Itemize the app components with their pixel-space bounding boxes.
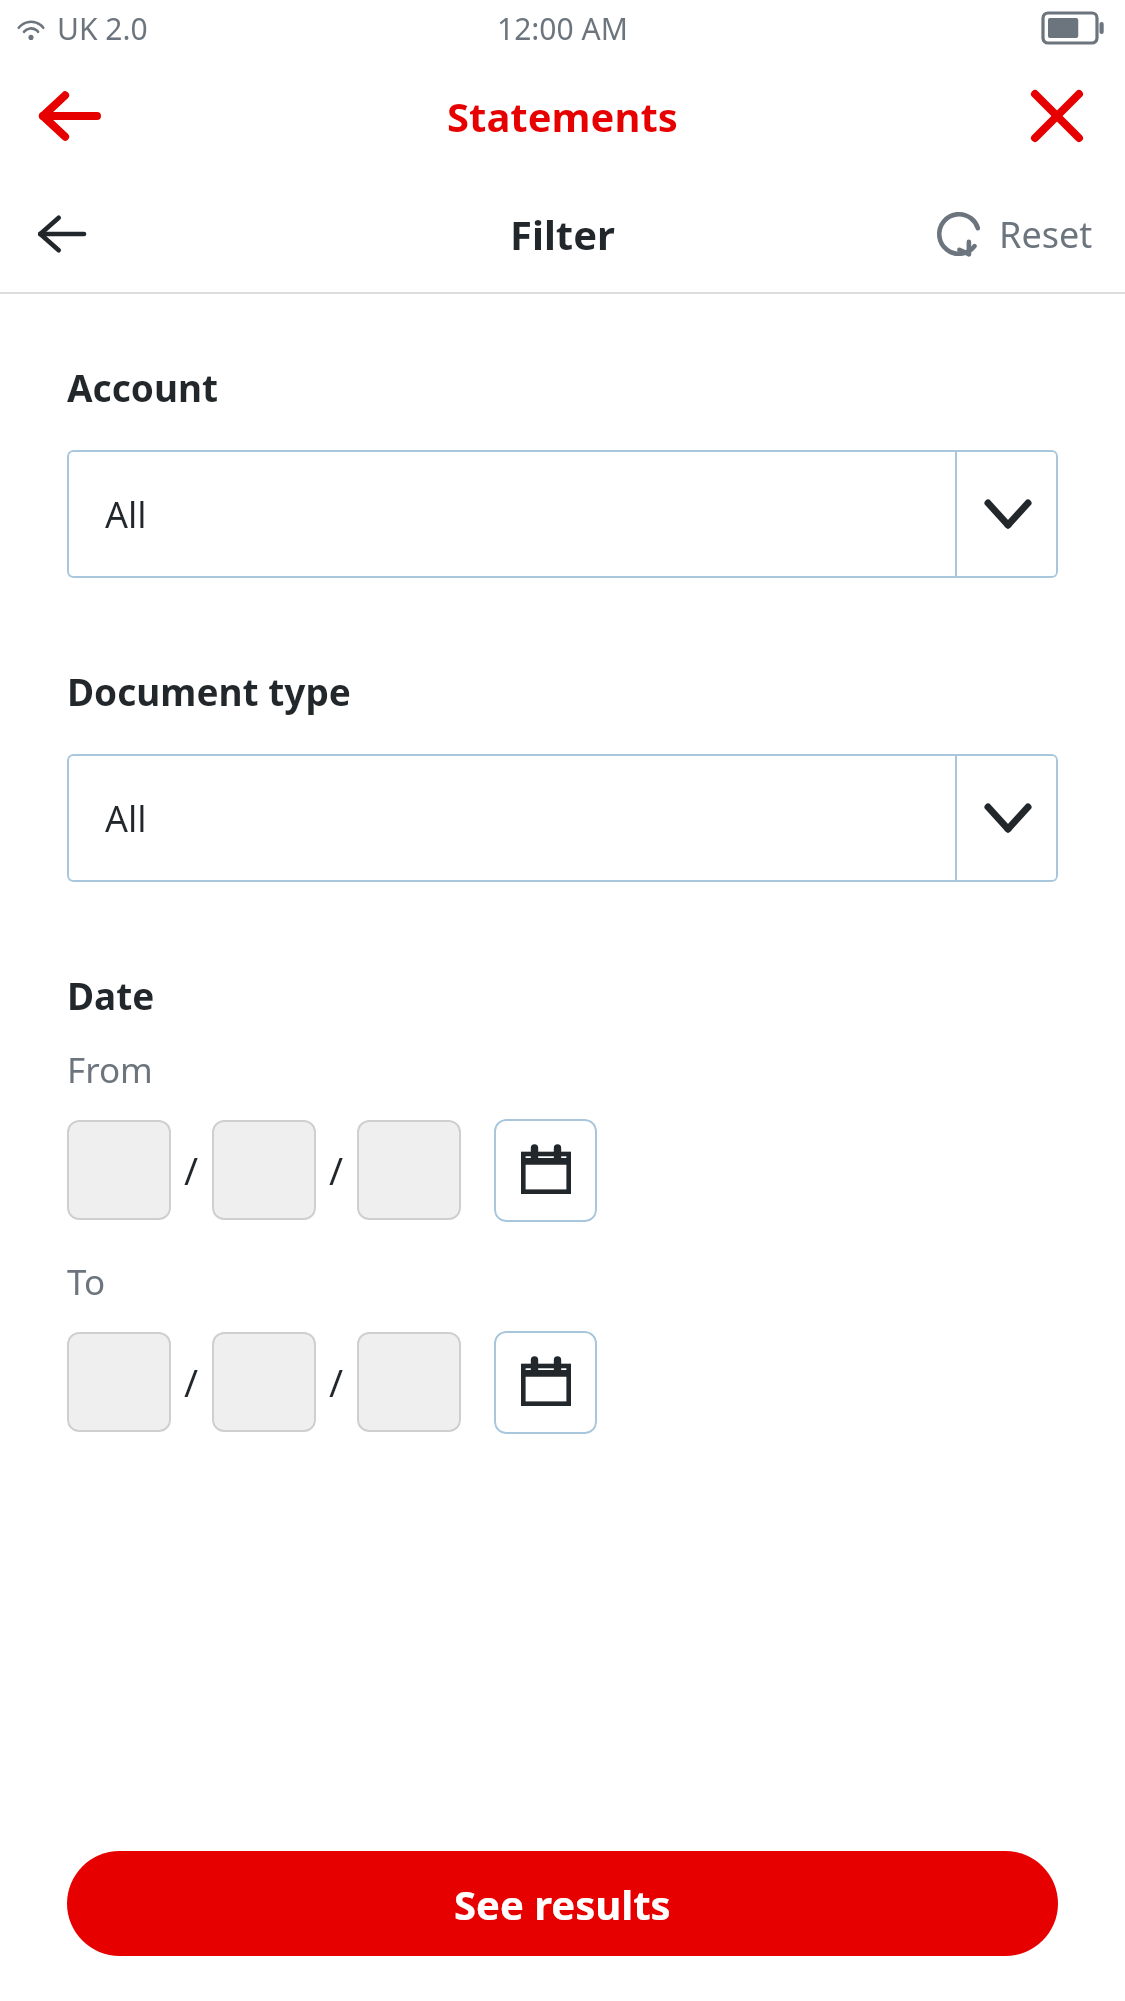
button[interactable]: Date field (212, 1120, 316, 1220)
staticText: From (67, 1046, 153, 1094)
button[interactable]: Date field (67, 1120, 171, 1220)
button[interactable]: All (67, 450, 1058, 578)
staticText: / (184, 1356, 199, 1408)
button[interactable]: Date field (212, 1332, 316, 1432)
button[interactable]: Back (28, 76, 108, 156)
button[interactable]: All (67, 754, 1058, 882)
staticText: See results (454, 1877, 671, 1931)
staticText: Reset (999, 210, 1093, 259)
staticText: All (105, 490, 147, 539)
staticText: / (329, 1144, 344, 1196)
staticText: Document type (67, 666, 351, 716)
button[interactable]: Date field (357, 1120, 461, 1220)
staticText: Date (67, 970, 155, 1020)
staticText: Account (67, 362, 219, 412)
button[interactable]: Date field (67, 1332, 171, 1432)
button[interactable]: Date field (357, 1332, 461, 1432)
button[interactable]: Back (24, 197, 98, 271)
button[interactable]: See results (67, 1851, 1058, 1956)
button[interactable]: Open calendar (494, 1331, 597, 1434)
staticText: 12:00 AM (497, 8, 628, 49)
staticText: UK 2.0 (57, 8, 148, 49)
staticText: / (184, 1144, 199, 1196)
button[interactable]: Close (1017, 76, 1097, 156)
staticText: / (329, 1356, 344, 1408)
button[interactable]: Open calendar (494, 1119, 597, 1222)
button[interactable]: Reset (925, 196, 1101, 272)
staticText: To (67, 1258, 106, 1306)
staticText: Statements (447, 89, 678, 143)
staticText: All (105, 794, 147, 843)
staticText: Filter (510, 207, 615, 261)
